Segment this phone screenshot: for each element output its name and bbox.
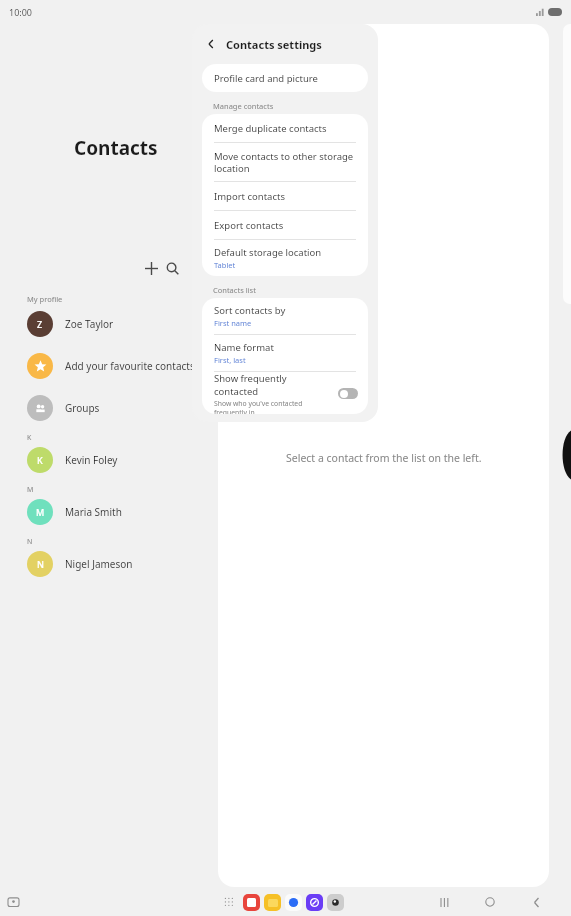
staticText: Manage contacts (213, 101, 274, 111)
button[interactable]: Groups (27, 394, 218, 422)
button[interactable]: Apps (219, 892, 239, 912)
staticText: Export contacts (214, 219, 284, 232)
button[interactable]: Name format (202, 335, 368, 371)
staticText: Contacts (74, 135, 158, 161)
staticText: Default storage location (214, 246, 322, 259)
button[interactable]: Add contact (138, 255, 164, 281)
button[interactable]: Export contacts (202, 211, 368, 239)
staticText: Name format (214, 341, 274, 354)
staticText: K (37, 454, 43, 466)
staticText: N (37, 558, 44, 570)
button[interactable]: Show frequently contacted (202, 372, 368, 414)
button[interactable]: Recents (431, 889, 457, 915)
button[interactable]: Sort contacts by (202, 298, 368, 334)
button[interactable]: App (285, 894, 302, 911)
button[interactable]: Screenshot (4, 893, 22, 911)
staticText: First name (214, 318, 252, 328)
staticText: Profile card and picture (214, 72, 318, 85)
button[interactable]: Move contacts to other storage location (202, 143, 368, 181)
staticText: Zoe Taylor (65, 317, 114, 331)
staticText: M (27, 485, 34, 495)
button[interactable]: K (27, 446, 218, 474)
staticText: Sort contacts by (214, 304, 286, 317)
staticText: Move contacts to other storage location (214, 150, 354, 175)
button[interactable]: M (27, 498, 218, 526)
button[interactable]: Add your favourite contacts (27, 352, 218, 380)
staticText: Add your favourite contacts (65, 359, 195, 373)
staticText: Contacts settings (226, 37, 322, 52)
button[interactable]: App (327, 894, 344, 911)
staticText: Tablet (214, 260, 236, 270)
staticText: M (36, 506, 45, 518)
button[interactable]: Search (159, 255, 185, 281)
staticText: Contacts list (213, 285, 256, 295)
staticText: N (27, 537, 33, 547)
staticText: Import contacts (214, 190, 285, 203)
button[interactable]: Default storage location (202, 240, 368, 276)
button[interactable]: Home (477, 889, 503, 915)
staticText: Maria Smith (65, 505, 122, 519)
staticText: 10:00 (9, 6, 33, 18)
staticText: Groups (65, 401, 100, 415)
other: Edge panel handle (558, 430, 571, 480)
button[interactable]: App (306, 894, 323, 911)
button[interactable]: N (27, 550, 218, 578)
button[interactable]: Back (201, 34, 221, 54)
button[interactable]: App (264, 894, 281, 911)
staticText: Nigel Jameson (65, 557, 133, 571)
button[interactable]: App (243, 894, 260, 911)
staticText: First, last (214, 355, 246, 365)
staticText: Show frequently contacted (214, 372, 332, 398)
button[interactable]: Import contacts (202, 182, 368, 210)
staticText: Show who you've contacted frequently in … (214, 399, 332, 414)
button[interactable]: Profile card and picture (202, 64, 368, 92)
staticText: Z (37, 318, 43, 330)
button[interactable]: Show frequently contacted toggle (338, 388, 358, 399)
staticText: My profile (27, 294, 63, 304)
staticText: Kevin Foley (65, 453, 118, 467)
staticText: K (27, 433, 32, 443)
button[interactable]: Z (27, 310, 218, 338)
staticText: Select a contact from the list on the le… (286, 451, 482, 465)
button[interactable]: Merge duplicate contacts (202, 114, 368, 142)
button[interactable]: Back (523, 889, 549, 915)
staticText: Merge duplicate contacts (214, 122, 327, 135)
